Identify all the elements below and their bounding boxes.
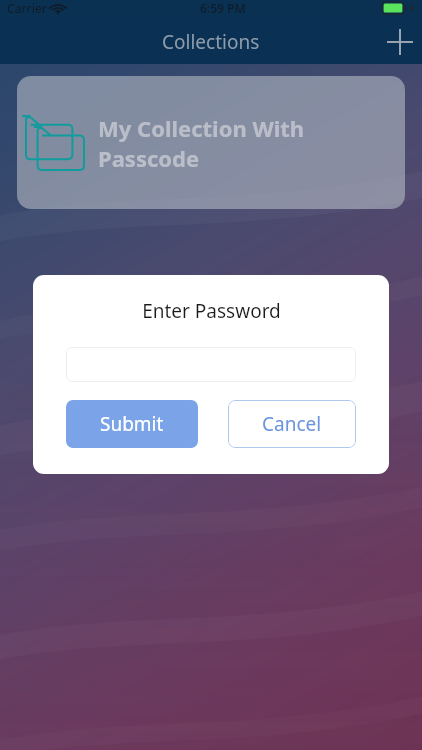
staticText: My Collection With Passcode <box>98 113 405 173</box>
staticText: Submit <box>100 411 164 437</box>
button[interactable]: My Collection With Passcode <box>17 76 405 209</box>
staticText: Carrier <box>7 0 47 16</box>
staticText: 6:59 PM <box>200 0 246 16</box>
button[interactable]: Cancel <box>228 400 356 448</box>
staticText: Cancel <box>262 411 322 437</box>
button[interactable]: Add collection <box>378 20 422 64</box>
staticText: Enter Password <box>142 298 281 324</box>
button[interactable] <box>66 347 356 382</box>
staticText: Collections <box>162 29 260 55</box>
button[interactable]: Submit <box>66 400 198 448</box>
